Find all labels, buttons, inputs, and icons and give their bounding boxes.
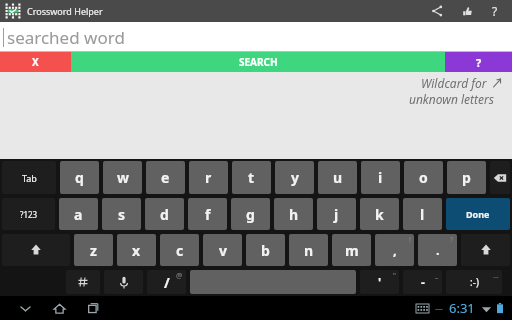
button[interactable]: Recent apps [76, 296, 110, 320]
staticText: , [393, 241, 397, 259]
staticText: unknown letters [408, 91, 494, 107]
button[interactable]: Hide keyboard [8, 296, 42, 320]
staticText: m [345, 241, 359, 260]
button[interactable]: h [274, 198, 313, 230]
staticText: ? [450, 235, 454, 245]
staticText: n [304, 241, 314, 260]
button[interactable]: t [232, 161, 271, 194]
staticText: i [378, 168, 383, 187]
button[interactable]: u [318, 161, 357, 194]
button[interactable]: X [0, 52, 71, 72]
staticText: Wildcard for [421, 75, 487, 91]
button[interactable]: f [188, 198, 227, 230]
button[interactable]: n [289, 234, 328, 266]
staticText: ' [378, 274, 382, 290]
button[interactable]: q [60, 161, 99, 194]
button[interactable]: Share [422, 0, 452, 22]
staticText: p [462, 168, 471, 187]
staticText: Tab [22, 172, 37, 184]
button[interactable]: b [246, 234, 285, 266]
button[interactable]: j [317, 198, 356, 230]
staticText: SEARCH [239, 55, 278, 69]
button[interactable]: c [160, 234, 199, 266]
staticText: " [393, 271, 396, 281]
button[interactable]: Backspace [490, 161, 510, 194]
staticText: . [436, 241, 440, 259]
staticText: q [75, 168, 84, 187]
staticText: f [205, 205, 211, 224]
staticText: x [132, 241, 141, 260]
button[interactable]: ? [445, 52, 512, 72]
button[interactable]: a [59, 198, 98, 230]
button[interactable]: y [275, 161, 314, 194]
button[interactable]: Voice input [104, 270, 143, 294]
staticText: l [420, 205, 425, 224]
staticText: searched word [7, 26, 125, 49]
staticText: e [161, 168, 170, 187]
button[interactable]: l [403, 198, 442, 230]
staticText: — [435, 303, 443, 314]
staticText: :-) [470, 275, 479, 289]
staticText: h [289, 205, 299, 224]
button[interactable]: w [103, 161, 142, 194]
staticText: ... [493, 271, 499, 281]
button[interactable]: o [404, 161, 443, 194]
button[interactable]: e [146, 161, 185, 194]
staticText: s [118, 205, 126, 224]
button[interactable]: searched word [0, 22, 512, 52]
staticText: z [90, 241, 97, 260]
button[interactable]: x [117, 234, 156, 266]
button[interactable]: s [102, 198, 141, 230]
staticText: d [160, 205, 169, 224]
button[interactable]: r [189, 161, 228, 194]
button[interactable]: Done [446, 198, 510, 230]
button[interactable]: Shift [2, 234, 70, 266]
staticText: a [74, 205, 83, 224]
staticText: g [246, 205, 255, 224]
staticText: ?123 [20, 209, 38, 220]
staticText: u [333, 168, 343, 187]
staticText: o [419, 168, 428, 187]
staticText: 6:31 [449, 299, 475, 317]
button[interactable]: k [360, 198, 399, 230]
staticText: t [248, 168, 255, 187]
staticText: @ [176, 271, 183, 281]
staticText: / [164, 273, 170, 292]
button[interactable]: z [74, 234, 113, 266]
button[interactable]: Help [482, 0, 508, 22]
staticText: c [176, 241, 184, 260]
staticText: Done [466, 208, 490, 220]
button[interactable]: m [332, 234, 371, 266]
staticText: j [334, 205, 339, 224]
staticText: ! [409, 235, 411, 245]
button[interactable]: v [203, 234, 242, 266]
staticText: y [291, 168, 299, 187]
button[interactable]: . [418, 234, 457, 266]
button[interactable]: :-) [446, 270, 502, 294]
staticText: Crossword Helper [27, 5, 103, 17]
staticText: b [261, 241, 270, 260]
button[interactable]: ' [360, 270, 399, 294]
button[interactable]: - [403, 270, 442, 294]
button[interactable]: Home [42, 296, 76, 320]
button[interactable]: / [147, 270, 186, 294]
button[interactable]: g [231, 198, 270, 230]
staticText: k [375, 205, 384, 224]
button[interactable]: Shift right [461, 234, 510, 266]
button[interactable]: Tab [2, 161, 56, 194]
button[interactable]: Rate [452, 0, 482, 22]
button[interactable]: p [447, 161, 486, 194]
button[interactable]: SEARCH [71, 52, 445, 72]
staticText: r [205, 168, 212, 187]
button[interactable]: ?123 [2, 198, 55, 230]
button[interactable]: , [375, 234, 414, 266]
staticText: _ [435, 271, 439, 281]
staticText: - [421, 274, 425, 290]
button[interactable]: Keyboard settings [66, 270, 100, 294]
staticText: X [32, 55, 39, 69]
staticText: ? [476, 55, 482, 70]
button[interactable]: d [145, 198, 184, 230]
button[interactable]: i [361, 161, 400, 194]
staticText: w [117, 168, 129, 187]
